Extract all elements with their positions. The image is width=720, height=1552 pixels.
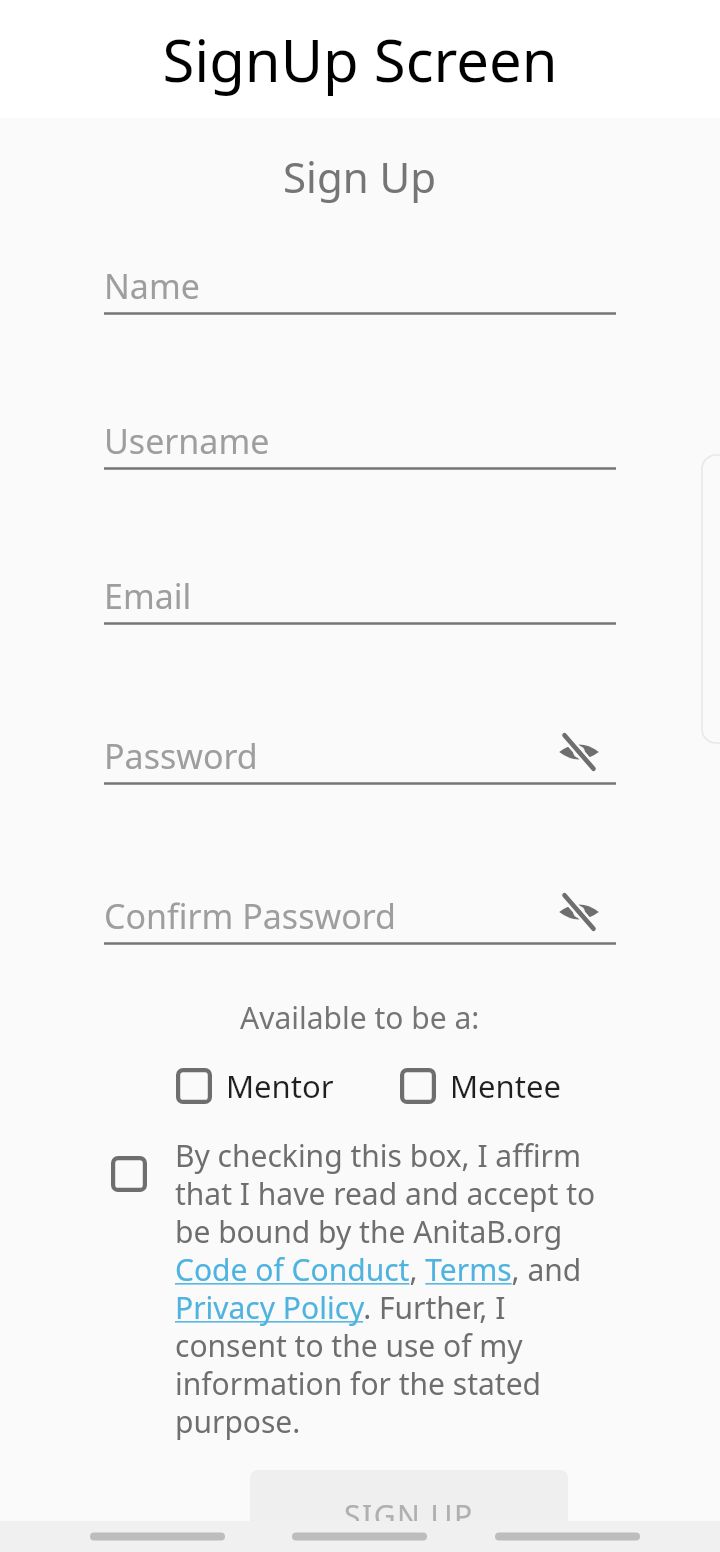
button[interactable]: Mentee — [400, 1065, 561, 1107]
button[interactable]: Toggle password visibility — [557, 890, 601, 934]
staticText: Name — [104, 263, 200, 309]
staticText: Email — [104, 573, 192, 619]
staticText: Confirm Password — [104, 893, 396, 939]
button[interactable]: Password — [104, 733, 616, 785]
button[interactable]: Toggle password visibility — [557, 730, 601, 774]
button[interactable]: Name — [104, 263, 616, 315]
staticText: By checking this box, I affirm that I ha… — [175, 1135, 615, 1442]
button[interactable]: Accept terms checkbox — [111, 1156, 147, 1192]
staticText: Sign Up — [283, 148, 437, 205]
staticText: Mentor — [226, 1065, 334, 1107]
button[interactable]: Mentor — [176, 1065, 334, 1107]
staticText: SIGN UP — [344, 1495, 474, 1536]
staticText: Username — [104, 418, 270, 464]
button[interactable]: SIGN UP — [250, 1470, 568, 1552]
button[interactable]: Username — [104, 418, 616, 470]
staticText: Available to be a: — [240, 997, 480, 1038]
button[interactable]: Email — [104, 573, 616, 625]
staticText: Mentee — [450, 1065, 561, 1107]
button[interactable]: Confirm Password — [104, 893, 616, 945]
staticText: Password — [104, 733, 258, 779]
staticText: SignUp Screen — [162, 20, 558, 99]
